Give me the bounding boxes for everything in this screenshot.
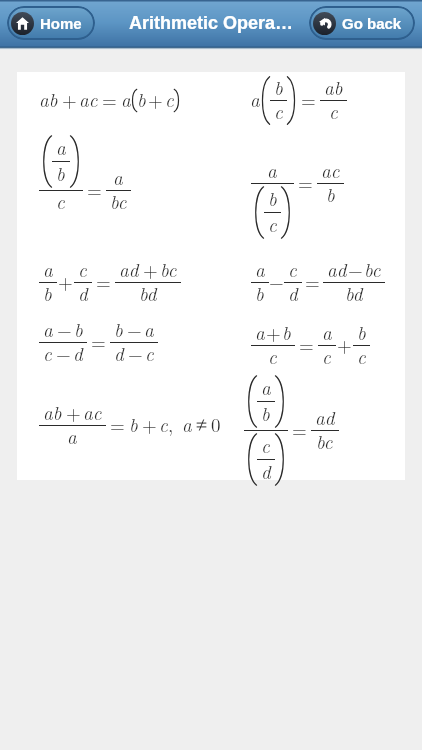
staticText: a (43, 316, 53, 343)
staticText: d (78, 280, 88, 307)
staticText: b (255, 280, 264, 307)
staticText: c (329, 98, 338, 125)
staticText: c (288, 256, 297, 283)
staticText: − (348, 256, 363, 283)
staticText: d (114, 340, 124, 367)
staticText: a (261, 374, 271, 401)
staticText: c (159, 411, 168, 438)
staticText: = (102, 86, 117, 113)
staticText: c (274, 98, 283, 125)
staticText: b (326, 181, 335, 208)
staticText: − (269, 268, 284, 295)
staticText: a (67, 423, 77, 450)
staticText: − (57, 316, 72, 343)
staticText: bc (364, 256, 381, 283)
staticText: c (268, 343, 277, 370)
staticText: a (250, 86, 260, 113)
staticText: a (121, 86, 131, 113)
staticText: = (91, 328, 106, 355)
staticText: − (56, 340, 71, 367)
staticText: = (110, 411, 125, 438)
staticText: + (66, 399, 81, 426)
staticText: = (292, 416, 307, 443)
staticText: = (298, 169, 313, 196)
staticText: ab (324, 74, 343, 101)
staticText: ad (327, 256, 347, 283)
staticText: + (337, 331, 352, 358)
staticText: a (182, 411, 192, 438)
staticText: c (43, 340, 52, 367)
staticText: Arithmetic Opera… (129, 13, 294, 33)
staticText: ab (43, 399, 62, 426)
staticText: a (43, 256, 53, 283)
staticText: d (288, 280, 298, 307)
staticText: + (142, 411, 157, 438)
staticText: c (145, 340, 154, 367)
staticText: b (282, 319, 291, 346)
staticText: b (43, 280, 52, 307)
staticText: b (357, 319, 366, 346)
staticText: bc (316, 428, 333, 455)
staticText: ac (83, 399, 102, 426)
staticText: b (274, 74, 283, 101)
staticText: + (266, 319, 281, 346)
staticText: = (301, 86, 316, 113)
staticText: + (143, 256, 158, 283)
staticText: Go back (342, 15, 402, 32)
staticText: + (148, 86, 163, 113)
staticText: ac (321, 157, 340, 184)
staticText: b (137, 86, 146, 113)
staticText: = (87, 176, 102, 203)
staticText: = (96, 268, 111, 295)
staticText: + (58, 268, 73, 295)
staticText: = (299, 331, 314, 358)
staticText: c (261, 432, 270, 459)
button[interactable]: Home (7, 6, 95, 40)
staticText: + (62, 86, 77, 113)
staticText: bc (110, 188, 127, 215)
staticText: c (322, 343, 331, 370)
staticText: a (322, 319, 332, 346)
staticText: c (268, 211, 277, 238)
staticText: = (305, 268, 320, 295)
staticText: c (357, 343, 366, 370)
staticText: b (261, 400, 270, 427)
staticText: − (128, 340, 143, 367)
staticText: bd (139, 280, 157, 307)
staticText: b (74, 316, 83, 343)
staticText: b (114, 316, 123, 343)
staticText: 0 (211, 411, 221, 438)
staticText: d (73, 340, 83, 367)
staticText: c (56, 188, 65, 215)
staticText: a (56, 134, 66, 161)
button[interactable]: Go back (309, 6, 415, 40)
staticText: c (78, 256, 87, 283)
staticText: a (267, 157, 277, 184)
staticText: ad (315, 404, 335, 431)
staticText: c (165, 86, 174, 113)
staticText: bc (160, 256, 177, 283)
staticText: ad (119, 256, 139, 283)
staticText: , (168, 411, 174, 438)
staticText: b (268, 185, 277, 212)
staticText: a (144, 316, 154, 343)
staticText: b (129, 411, 138, 438)
staticText: a (255, 319, 265, 346)
staticText: Home (40, 15, 82, 32)
staticText: a (113, 164, 123, 191)
staticText: d (261, 458, 271, 485)
staticText: b (56, 160, 65, 187)
staticText: − (127, 316, 142, 343)
staticText: bd (345, 280, 363, 307)
staticText: ac (79, 86, 98, 113)
staticText: a (255, 256, 265, 283)
staticText: ab (39, 86, 58, 113)
